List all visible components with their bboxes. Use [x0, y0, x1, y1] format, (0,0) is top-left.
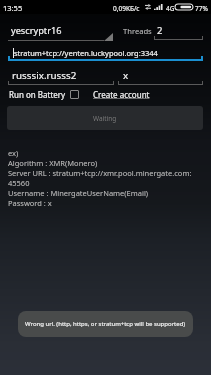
staticText: Waiting	[93, 114, 117, 123]
button[interactable]	[8, 18, 113, 42]
staticText: russsix.russs2	[12, 69, 77, 82]
staticText: ex)	[8, 148, 19, 158]
staticText: Threads	[123, 26, 152, 36]
staticText: 45560	[8, 178, 30, 188]
staticText: stratum+tcp://yenten.luckypool.org:3344	[14, 48, 158, 58]
staticText: Server URL : stratum+tcp://xmr.pool.mine…	[8, 168, 192, 178]
staticText: yescryptr16	[11, 24, 62, 37]
staticText: Run on Battery	[9, 89, 66, 100]
button[interactable]	[8, 66, 114, 84]
staticText: Create account	[93, 89, 150, 100]
button[interactable]	[118, 66, 203, 84]
staticText: 4G	[166, 4, 175, 13]
staticText: x	[123, 69, 129, 82]
staticText: Wrong url. (http, https, or stratum+tcp …	[25, 320, 186, 328]
button[interactable]: Waiting	[7, 106, 203, 130]
staticText: Username : MinergateUserName(Email)	[8, 188, 149, 198]
staticText: 77%	[195, 4, 208, 13]
staticText: 13:55	[3, 3, 23, 13]
staticText: Password : x	[8, 198, 52, 208]
button[interactable]: Run on Battery	[9, 88, 79, 101]
button[interactable]: Create account	[93, 88, 150, 101]
staticText: Algorithm : XMR(Monero)	[8, 158, 98, 168]
staticText: 0,09KБ/c	[113, 4, 140, 13]
button[interactable]	[8, 44, 203, 59]
button[interactable]	[154, 18, 204, 40]
staticText: 2	[157, 24, 163, 37]
